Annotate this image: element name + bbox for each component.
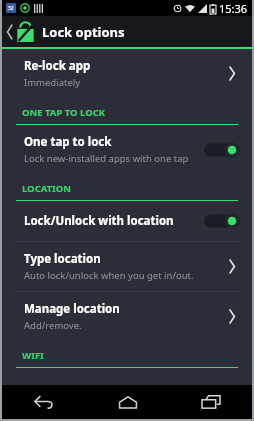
button[interactable]: Type location [2,242,252,291]
staticText: Auto lock/unlock when you get in/out. [24,269,194,282]
staticText: Lock/Unlock with location [24,213,174,229]
staticText: Add/remove. [24,319,82,332]
staticText: Re-lock app [24,58,91,74]
staticText: WIFI [22,349,44,362]
staticText: One tap to lock [24,134,112,150]
staticText: ONE TAP TO LOCK [22,106,106,119]
staticText: Lock options [42,23,125,41]
staticText: Manage location [24,301,120,317]
staticText: LOCATION [22,182,72,195]
button[interactable]: Back [2,16,252,47]
button[interactable]: Recent apps [169,385,252,419]
button[interactable]: Back [2,385,86,419]
button[interactable]: Re-lock app [2,49,252,98]
staticText: Immediately [24,76,81,89]
staticText: 32 [8,5,14,12]
staticText: Lock new-installed apps with one tap [24,152,189,165]
staticText: 15:36 [219,1,248,16]
button[interactable]: One tap to lock [2,125,252,174]
button[interactable]: Manage location [2,292,252,341]
button[interactable]: Home [86,385,169,419]
staticText: Type location [24,251,101,267]
button[interactable]: Lock/Unlock with location [2,201,252,241]
